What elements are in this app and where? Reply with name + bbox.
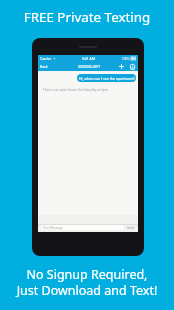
staticText: Carrier bbox=[40, 56, 52, 61]
button[interactable]: New message bbox=[118, 62, 125, 71]
staticText: Just Download and Text! bbox=[0, 282, 174, 299]
button[interactable]: Send bbox=[127, 226, 135, 230]
staticText: 100% bbox=[122, 57, 130, 61]
button[interactable]: Contact info bbox=[128, 62, 136, 71]
staticText: Text Message bbox=[43, 226, 63, 230]
staticText: No Signup Required, bbox=[0, 266, 174, 283]
staticText: There is an open house this Saturday at … bbox=[43, 88, 108, 92]
button[interactable]: Back bbox=[38, 64, 48, 69]
staticText: (000)000-0071 bbox=[78, 64, 101, 69]
staticText: Hi, when can I see the apartment? bbox=[79, 76, 135, 81]
staticText: FREE Private Texting bbox=[0, 8, 174, 26]
staticText: 9:41 AM bbox=[82, 56, 95, 61]
button[interactable]: Text Message bbox=[41, 225, 124, 230]
